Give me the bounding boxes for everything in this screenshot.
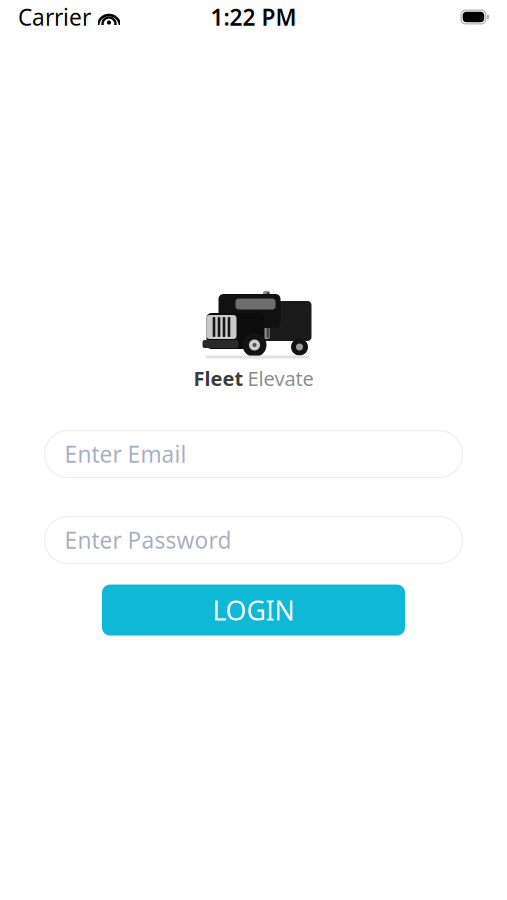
staticText: Carrier [18, 2, 91, 32]
staticText: 1:22 PM [210, 2, 296, 32]
staticText: Enter Password [64, 525, 231, 555]
staticText: LOGIN [212, 592, 294, 628]
staticText: Enter Email [64, 439, 186, 469]
staticText: Elevate [247, 365, 313, 392]
staticText: Fleet [193, 365, 243, 392]
button[interactable]: LOGIN [102, 585, 405, 636]
button[interactable]: Enter Password [44, 517, 462, 564]
button[interactable]: Enter Email [44, 431, 462, 478]
